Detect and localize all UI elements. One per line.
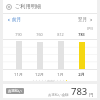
staticText: 前月 xyxy=(12,17,22,23)
staticText: 1月 xyxy=(57,72,64,78)
staticText: 12月 xyxy=(35,72,44,78)
button[interactable] xyxy=(29,40,50,69)
staticText: 円 xyxy=(89,92,94,97)
button[interactable]: 翌月 xyxy=(77,16,94,24)
staticText: 783 xyxy=(71,85,88,98)
button[interactable]: お支払い xyxy=(3,84,97,98)
staticText: 790 xyxy=(15,32,22,37)
staticText: 783 xyxy=(78,32,85,37)
button[interactable] xyxy=(71,40,92,69)
staticText: 760 xyxy=(36,32,43,37)
staticText: (円) xyxy=(87,26,93,31)
staticText: お支払い xyxy=(8,89,22,93)
staticText: 11月 xyxy=(14,72,23,78)
staticText: 812 xyxy=(57,32,64,37)
staticText: ご利用明細 xyxy=(15,3,42,10)
staticText: 2月 xyxy=(78,72,85,78)
button[interactable]: 前月 xyxy=(6,16,23,24)
button[interactable] xyxy=(8,40,29,69)
button[interactable]: 明細アイコン xyxy=(3,0,97,13)
staticText: 翌月 xyxy=(78,17,88,23)
button[interactable] xyxy=(50,40,71,69)
button[interactable]: 月選択インジケーター xyxy=(3,80,97,81)
other: 明細アイコン xyxy=(6,4,12,10)
staticText: お支払い金額 xyxy=(48,93,69,97)
